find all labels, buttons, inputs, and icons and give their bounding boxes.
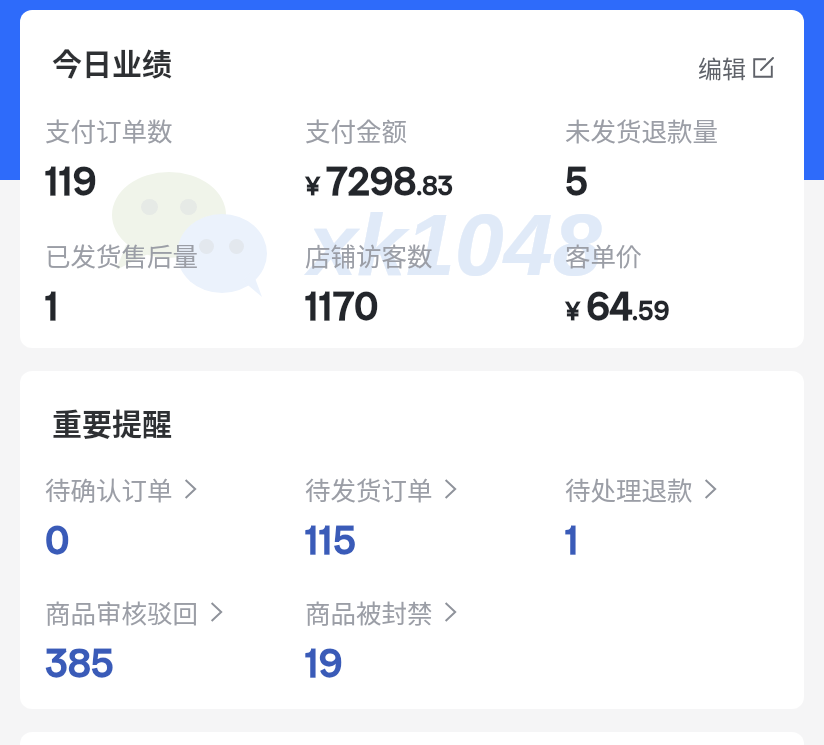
staticText: 已发货售后量: [45, 236, 199, 273]
staticText: xk1048: [308, 195, 602, 293]
staticText: 商品被封禁: [305, 593, 433, 630]
staticText: 编辑: [698, 50, 746, 85]
other: 编辑: [753, 58, 773, 78]
staticText: 1170: [305, 280, 379, 332]
staticText: 5: [565, 155, 589, 207]
staticText: 待发货订单: [305, 470, 433, 507]
staticText: 待处理退款: [565, 470, 693, 507]
staticText: 119: [45, 155, 97, 207]
button[interactable]: 商品被封禁: [305, 593, 565, 689]
staticText: 未发货退款量: [565, 111, 719, 148]
staticText: ¥ 7298.83: [305, 155, 453, 207]
staticText: 商品审核驳回: [45, 593, 199, 630]
button[interactable]: 待发货订单: [305, 470, 565, 566]
staticText: 店铺访客数: [305, 236, 433, 273]
staticText: 0: [45, 514, 70, 566]
staticText: 支付金额: [305, 111, 408, 148]
button[interactable]: 待处理退款: [565, 470, 804, 566]
staticText: 重要提醒: [52, 400, 172, 443]
button[interactable]: 商品审核驳回: [45, 593, 305, 689]
button[interactable]: 编辑: [692, 44, 779, 91]
staticText: 客单价: [565, 236, 642, 273]
staticText: 1: [45, 280, 59, 332]
staticText: 115: [305, 514, 357, 566]
staticText: 待确认订单: [45, 470, 173, 507]
staticText: 385: [45, 637, 114, 689]
staticText: ¥ 64.59: [565, 280, 670, 332]
button[interactable]: 待确认订单: [45, 470, 305, 566]
staticText: 今日业绩: [52, 40, 172, 83]
staticText: 支付订单数: [45, 111, 173, 148]
staticText: 19: [305, 637, 343, 689]
staticText: 1: [565, 514, 579, 566]
